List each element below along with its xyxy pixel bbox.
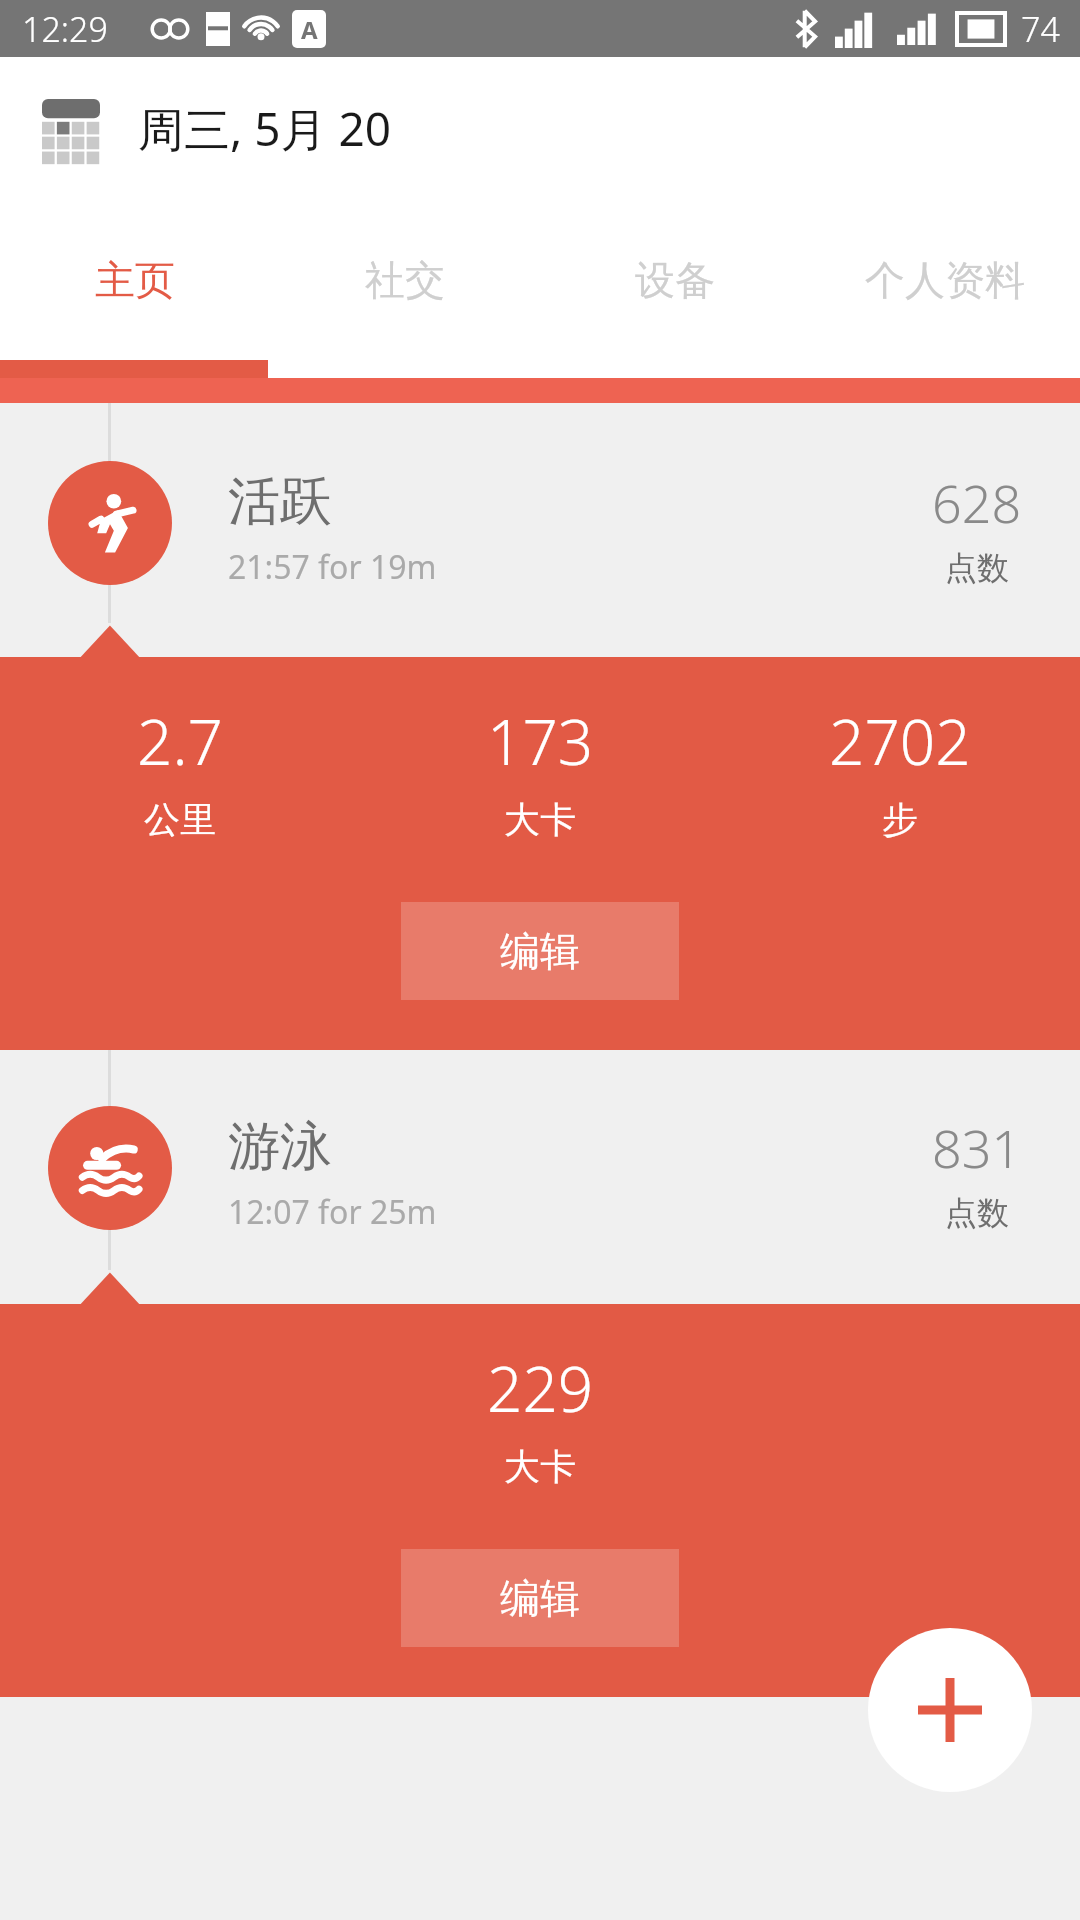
- staticText: 编辑: [500, 1573, 580, 1623]
- button[interactable]: 游泳: [0, 1050, 1080, 1270]
- staticText: 个人资料: [865, 255, 1025, 305]
- staticText: 2.7: [137, 699, 223, 783]
- staticText: 周三, 5月 20: [138, 97, 392, 160]
- button[interactable]: 社交: [270, 200, 540, 360]
- staticText: 大卡: [504, 1444, 576, 1489]
- button[interactable]: 编辑: [401, 1549, 679, 1647]
- staticText: 编辑: [500, 926, 580, 976]
- staticText: 12:07 for 25m: [228, 1190, 437, 1234]
- button[interactable]: 编辑: [401, 902, 679, 1000]
- staticText: 点数: [945, 1193, 1009, 1233]
- staticText: 大卡: [504, 797, 576, 842]
- staticText: 21:57 for 19m: [228, 545, 437, 589]
- staticText: A: [301, 13, 318, 46]
- button[interactable]: 个人资料: [810, 200, 1080, 360]
- staticText: 公里: [144, 797, 216, 842]
- staticText: 173: [487, 699, 594, 783]
- button[interactable]: 设备: [540, 200, 810, 360]
- staticText: 点数: [945, 548, 1009, 588]
- staticText: 活跃: [228, 469, 332, 535]
- staticText: 229: [487, 1346, 594, 1430]
- staticText: 主页: [95, 255, 175, 305]
- staticText: 12:29: [22, 6, 108, 52]
- staticText: 设备: [635, 255, 715, 305]
- staticText: 74: [1021, 6, 1060, 52]
- staticText: 步: [882, 797, 918, 842]
- button[interactable]: 主页: [0, 200, 270, 360]
- staticText: 628: [932, 467, 1022, 538]
- staticText: 2702: [829, 699, 971, 783]
- button[interactable]: 活跃: [0, 403, 1080, 623]
- button[interactable]: Add activity: [868, 1628, 1032, 1792]
- staticText: 游泳: [228, 1114, 332, 1180]
- staticText: 社交: [365, 255, 445, 305]
- staticText: 831: [932, 1112, 1022, 1183]
